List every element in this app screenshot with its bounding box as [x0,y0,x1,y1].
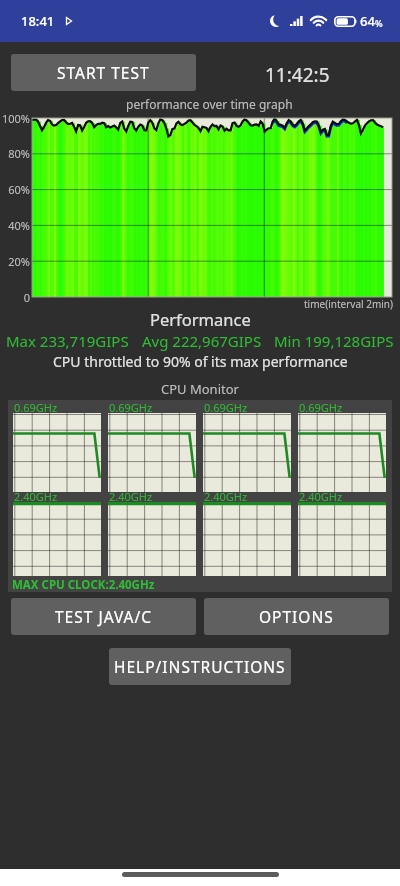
staticText: 2.40GHz [14,489,58,504]
staticText: % [375,17,383,29]
staticText: 0.69GHz [204,400,248,415]
staticText: 0.69GHz [14,400,58,415]
button[interactable]: HELP/INSTRUCTIONS [109,648,291,685]
staticText: MAX CPU CLOCK:2.40GHz [12,577,155,593]
button[interactable]: TEST JAVA/C [11,598,196,635]
staticText: Min 199,128GIPS [274,331,394,351]
button[interactable]: OPTIONS [204,598,389,635]
staticText: time(interval 2min) [304,297,394,311]
staticText: 20% [0,254,30,269]
staticText: Avg 222,967GIPS [142,331,262,351]
staticText: 64 [360,12,375,30]
staticText: 60% [0,182,30,197]
staticText: 2.40GHz [109,489,153,504]
staticText: Performance [150,308,251,330]
staticText: 2.40GHz [204,489,248,504]
staticText: 40% [0,218,30,233]
staticText: CPU Monitor [161,380,239,398]
staticText: 18:41 [21,12,55,30]
staticText: CPU throttled to 90% of its max performa… [53,352,348,371]
staticText: START TEST [57,62,150,83]
staticText: Max 233,719GIPS [6,331,129,351]
staticText: 11:42:5 [265,62,330,88]
staticText: 100% [0,111,30,126]
staticText: OPTIONS [259,606,334,627]
staticText: 0 [0,290,30,305]
staticText: 0.69GHz [299,400,343,415]
staticText: TEST JAVA/C [55,606,153,627]
staticText: 80% [0,146,30,161]
staticText: 2.40GHz [299,489,343,504]
staticText: HELP/INSTRUCTIONS [114,656,286,677]
staticText: performance over time graph [126,96,293,112]
button[interactable]: START TEST [11,54,196,91]
staticText: 0.69GHz [109,400,153,415]
